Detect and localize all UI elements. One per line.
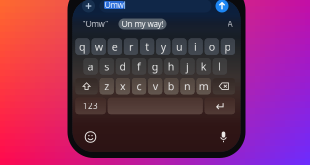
staticText: w — [95, 39, 103, 54]
staticText: s — [104, 59, 109, 73]
staticText: a — [88, 59, 94, 73]
button[interactable]: q — [75, 38, 89, 55]
button[interactable]: w — [92, 38, 106, 55]
staticText: i — [194, 39, 197, 54]
staticText: e — [112, 39, 118, 54]
button[interactable]: Emoji keyboard — [81, 128, 99, 146]
button[interactable]: a — [84, 58, 98, 75]
button[interactable]: Return — [205, 98, 235, 114]
staticText: r — [129, 39, 133, 54]
staticText: x — [120, 79, 126, 93]
button[interactable]: h — [164, 58, 178, 75]
button[interactable]: r — [124, 38, 138, 55]
button[interactable]: x — [116, 78, 130, 94]
staticText: v — [153, 79, 158, 93]
staticText: 123 — [83, 101, 98, 111]
button[interactable]: s — [100, 58, 114, 75]
button[interactable]: y — [156, 38, 170, 55]
staticText: o — [209, 39, 215, 54]
button[interactable]: c — [132, 78, 146, 94]
staticText: k — [201, 59, 207, 73]
staticText: On my way! — [121, 19, 163, 29]
button[interactable]: g — [148, 58, 162, 75]
button[interactable]: Text formatting — [224, 18, 235, 29]
button[interactable]: Add attachment — [82, 0, 95, 12]
button[interactable]: t — [140, 38, 154, 55]
staticText: “Omw” — [82, 19, 108, 29]
button[interactable]: Shift — [75, 78, 98, 94]
button[interactable]: j — [180, 58, 194, 75]
staticText: d — [119, 59, 126, 73]
staticText: z — [104, 79, 109, 93]
button[interactable]: Delete — [213, 78, 235, 94]
staticText: h — [168, 59, 175, 73]
button[interactable]: Send — [215, 0, 228, 12]
staticText: A — [227, 19, 232, 29]
button[interactable]: On my way! — [118, 18, 166, 29]
button[interactable]: “Omw” — [79, 18, 111, 29]
button[interactable]: p — [221, 38, 235, 55]
button[interactable]: Dictation — [214, 128, 232, 146]
button[interactable]: k — [197, 58, 211, 75]
button[interactable]: u — [172, 38, 186, 55]
button[interactable]: n — [180, 78, 194, 94]
staticText: t — [145, 39, 149, 54]
staticText: y — [161, 39, 166, 54]
button[interactable]: b — [164, 78, 178, 94]
button[interactable]: o — [205, 38, 219, 55]
staticText: u — [176, 39, 183, 54]
button[interactable]: d — [116, 58, 130, 75]
button[interactable]: 123 — [75, 98, 106, 114]
staticText: f — [137, 59, 141, 73]
button[interactable]: v — [148, 78, 162, 94]
staticText: l — [218, 59, 221, 73]
staticText: n — [184, 79, 191, 93]
button[interactable]: l — [213, 58, 227, 75]
button[interactable]: z — [100, 78, 114, 94]
button[interactable] — [108, 98, 203, 114]
staticText: m — [199, 79, 209, 93]
staticText: j — [186, 59, 189, 73]
staticText: q — [79, 39, 86, 54]
staticText: b — [168, 79, 175, 93]
staticText: g — [152, 59, 159, 73]
button[interactable]: f — [132, 58, 146, 75]
staticText: Omw — [104, 0, 123, 10]
staticText: p — [224, 39, 231, 54]
button[interactable]: e — [108, 38, 122, 55]
button[interactable]: m — [197, 78, 211, 94]
staticText: c — [136, 79, 141, 93]
button[interactable]: i — [188, 38, 202, 55]
